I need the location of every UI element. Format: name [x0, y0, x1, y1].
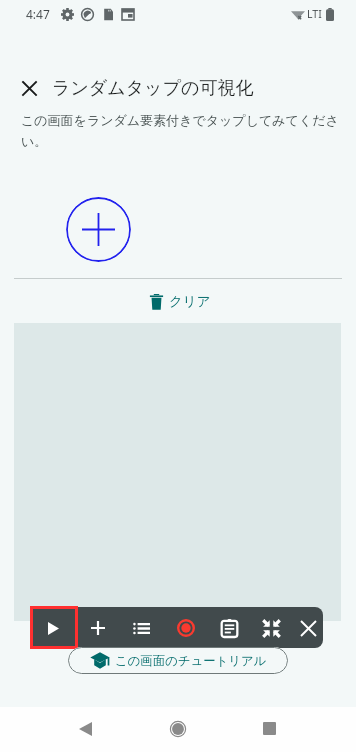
staticText: ランダムタップの可視化 [52, 77, 254, 100]
button[interactable]: Close [14, 73, 44, 103]
button[interactable]: Add [80, 610, 116, 646]
staticText: LTI [307, 7, 322, 21]
button[interactable]: Close toolbar [290, 610, 323, 646]
button[interactable]: この画面のチュートリアル [68, 647, 288, 674]
button[interactable]: Home [155, 706, 200, 751]
staticText: この画面のチュートリアル [115, 653, 267, 669]
staticText: 4:47 [26, 6, 50, 22]
button[interactable]: Back [63, 706, 108, 751]
staticText: この画面をランダム要素付きでタップしてみてください。 [21, 112, 342, 150]
button[interactable] [14, 323, 341, 621]
button[interactable]: Collapse [253, 610, 289, 646]
button[interactable]: Record [168, 610, 204, 646]
button[interactable]: Play [35, 610, 71, 646]
button[interactable]: クリア [141, 288, 219, 315]
button[interactable]: List [123, 610, 159, 646]
button[interactable]: Clipboard [211, 610, 247, 646]
button[interactable]: Add random element [66, 197, 131, 262]
button[interactable]: Recent apps [247, 706, 292, 751]
staticText: クリア [169, 293, 211, 310]
